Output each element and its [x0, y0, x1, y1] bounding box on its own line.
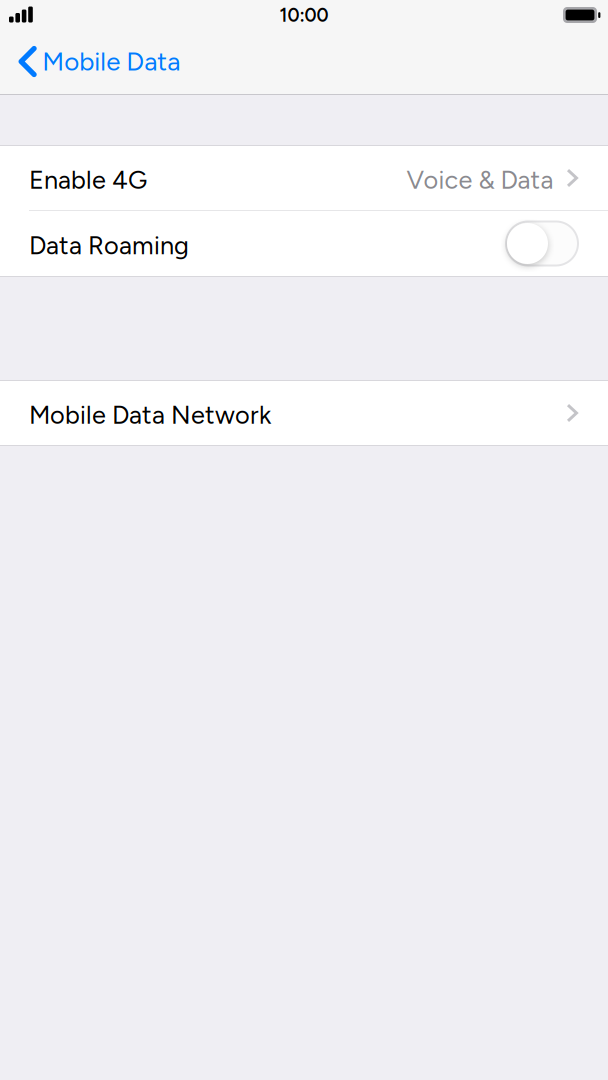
button[interactable]: Enable 4G [0, 146, 608, 210]
staticText: Mobile Data Network [29, 400, 271, 430]
staticText: Enable 4G [29, 165, 147, 195]
staticText: Mobile Data [42, 46, 180, 77]
button[interactable]: Mobile Data Network [0, 381, 608, 445]
button[interactable]: Mobile Data [0, 36, 192, 94]
staticText: Voice & Data [406, 165, 553, 195]
button[interactable]: Data Roaming [506, 221, 578, 265]
staticText: Data Roaming [29, 230, 189, 261]
staticText: 10:00 [279, 4, 328, 26]
